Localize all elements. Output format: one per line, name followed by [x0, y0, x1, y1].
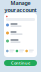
staticText: Continue	[11, 60, 30, 66]
staticText: your account	[4, 6, 36, 14]
button[interactable]: Continue	[4, 60, 37, 66]
staticText: Manage	[10, 0, 30, 6]
